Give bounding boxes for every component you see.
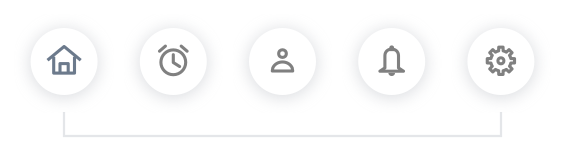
button[interactable]: Settings	[467, 28, 534, 95]
button[interactable]: Notifications	[358, 28, 425, 95]
button[interactable]: Home	[31, 28, 98, 95]
button[interactable]: Alarms	[140, 28, 207, 95]
button[interactable]: Profile	[249, 28, 316, 95]
